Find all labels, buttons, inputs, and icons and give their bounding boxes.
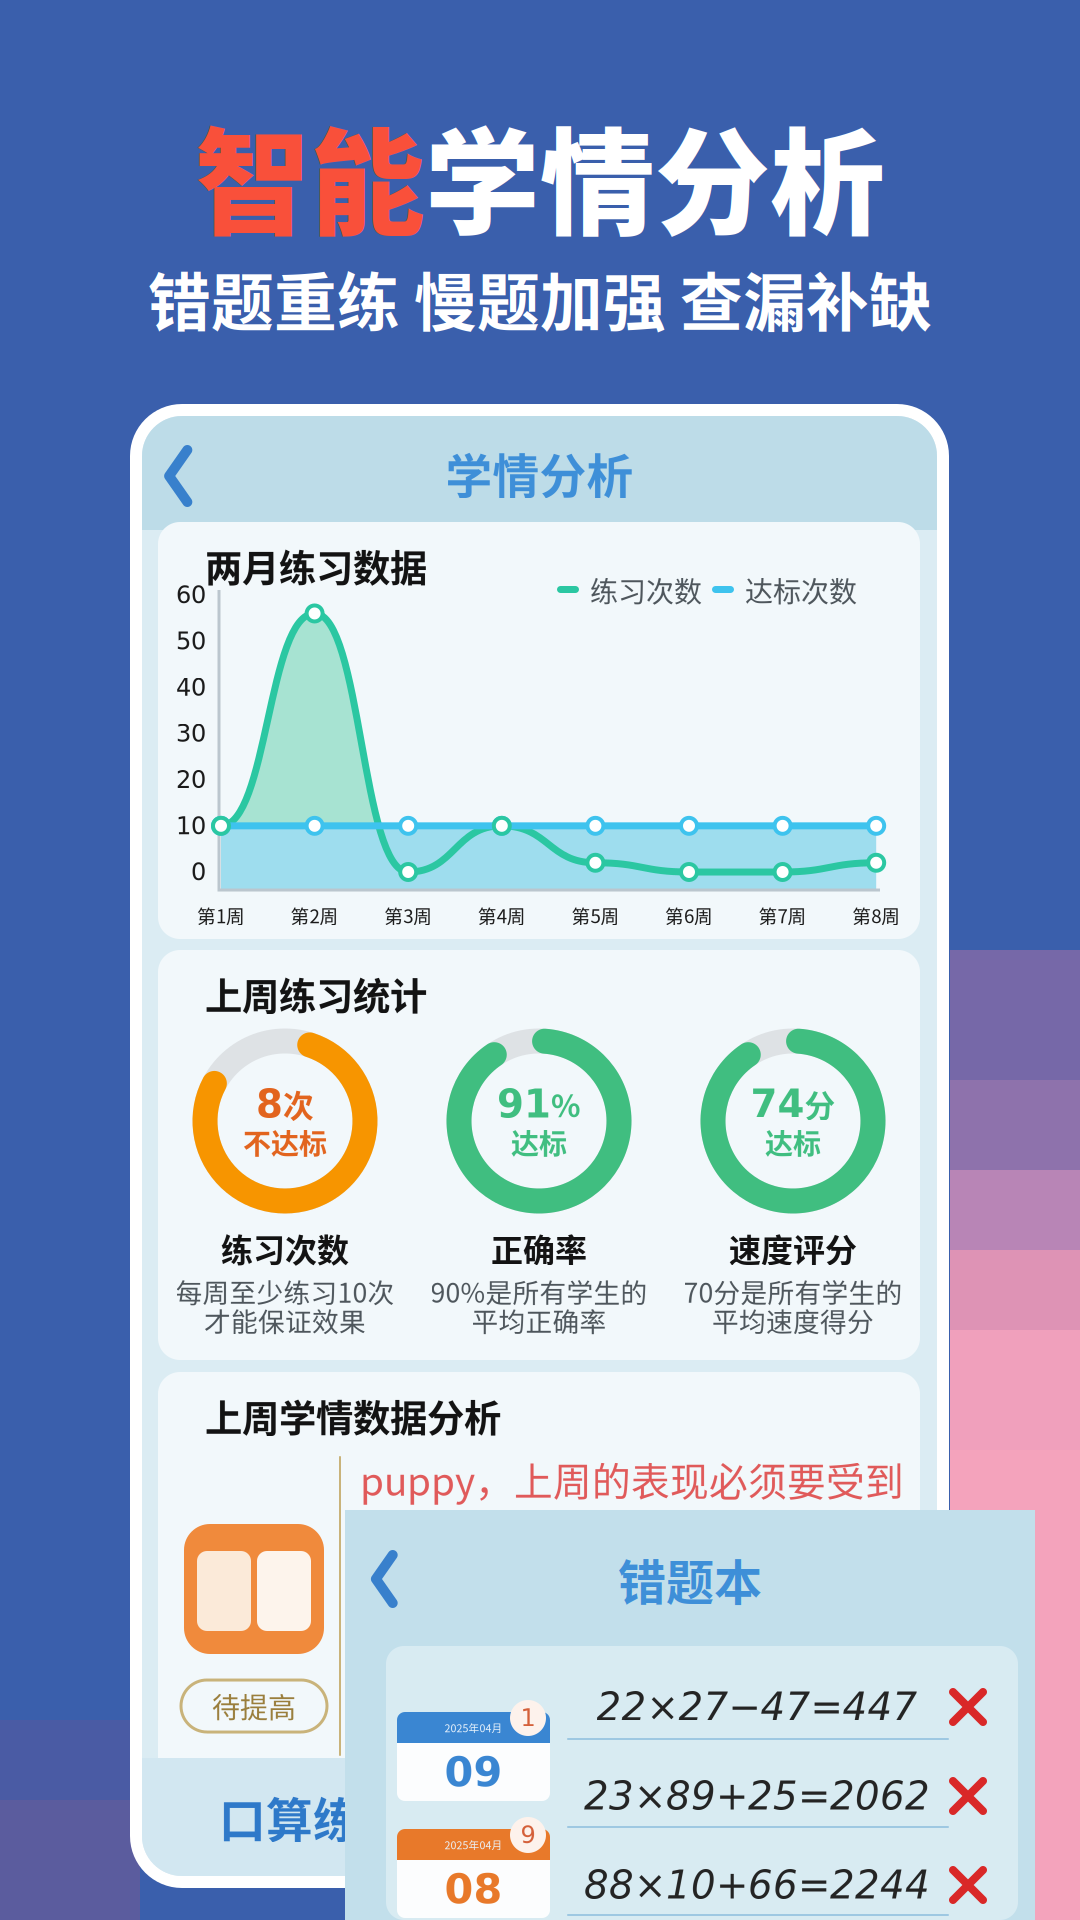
staticText: 错题本 bbox=[618, 1544, 762, 1614]
staticText: 第5周 bbox=[571, 901, 619, 928]
staticText: 第2周 bbox=[291, 901, 339, 928]
staticText: 批评哦。 bbox=[360, 1499, 516, 1555]
staticText: 88×10+66=2244 bbox=[584, 1862, 930, 1907]
staticText: 20 bbox=[176, 766, 206, 794]
staticText: 错题重练 慢题加强 查漏补缺 bbox=[148, 253, 932, 343]
staticText: 待提高 bbox=[212, 1686, 296, 1726]
button[interactable]: 返回 bbox=[148, 438, 210, 514]
staticText: 智能 bbox=[195, 92, 425, 258]
staticText: 90%是所有学生的 bbox=[430, 1272, 647, 1310]
staticText: 速度评分 bbox=[729, 1225, 857, 1271]
staticText: 2025年04月 bbox=[444, 1837, 502, 1852]
staticText: 74 bbox=[750, 1081, 804, 1126]
staticText: 练习次数 bbox=[590, 570, 702, 610]
staticText: 1 bbox=[520, 1704, 535, 1732]
staticText: 学情分析 bbox=[445, 439, 633, 507]
staticText: 次 bbox=[283, 1082, 314, 1126]
staticText: 上周练习统计 bbox=[205, 967, 427, 1021]
staticText: 正确率 bbox=[491, 1225, 587, 1271]
staticText: 10 bbox=[176, 812, 206, 840]
staticText: 2025年04月 bbox=[444, 1720, 502, 1735]
staticText: 9 bbox=[520, 1821, 535, 1849]
staticText: 8 bbox=[256, 1081, 283, 1126]
staticText: 正确率还不够充分，答题正确率较为优 bbox=[360, 1556, 921, 1604]
staticText: 两月练习数据 bbox=[205, 539, 427, 593]
staticText: 慢，需要积极加强；总体上，对当前知 bbox=[360, 1652, 921, 1700]
staticText: 平均速度得分 bbox=[712, 1301, 874, 1339]
staticText: 第3周 bbox=[384, 901, 432, 928]
staticText: % bbox=[551, 1082, 581, 1126]
staticText: 达标 bbox=[765, 1122, 821, 1162]
staticText: 才能保证效果 bbox=[204, 1301, 366, 1339]
staticText: 60 bbox=[176, 581, 206, 609]
staticText: 第4周 bbox=[478, 901, 526, 928]
staticText: 口算练习 bbox=[219, 1783, 407, 1851]
staticText: 秀，但仍有一定提升空间，答题速度较 bbox=[360, 1604, 921, 1652]
staticText: 不达标 bbox=[243, 1122, 327, 1162]
staticText: 每周至少练习10次 bbox=[175, 1272, 394, 1310]
button[interactable]: 返回 bbox=[356, 1544, 414, 1614]
staticText: 09 bbox=[444, 1748, 502, 1796]
staticText: 第6周 bbox=[665, 901, 713, 928]
staticText: 23×89+25=2062 bbox=[584, 1773, 930, 1818]
staticText: 达标 bbox=[511, 1122, 567, 1162]
staticText: 50 bbox=[176, 627, 206, 655]
staticText: 分 bbox=[804, 1082, 835, 1126]
staticText: 30 bbox=[176, 719, 206, 747]
staticText: 08 bbox=[444, 1865, 502, 1913]
staticText: 第1周 bbox=[197, 901, 245, 928]
staticText: 22×27−47=447 bbox=[596, 1684, 917, 1729]
staticText: 识点掌握还不够扎实，熟练度也不够， bbox=[360, 1700, 921, 1748]
staticText: 上周学情数据分析 bbox=[205, 1389, 501, 1443]
button[interactable]: 口算练习 bbox=[188, 1758, 438, 1876]
staticText: 第7周 bbox=[759, 901, 807, 928]
staticText: 0 bbox=[191, 858, 206, 886]
staticText: 学情分析 bbox=[425, 92, 885, 258]
staticText: 70分是所有学生的 bbox=[683, 1272, 902, 1310]
staticText: 平均正确率 bbox=[471, 1301, 606, 1339]
staticText: 第8周 bbox=[852, 901, 900, 928]
staticText: 40 bbox=[176, 673, 206, 701]
staticText: puppy，上周的表现必须要受到 bbox=[360, 1451, 904, 1507]
staticText: 91 bbox=[497, 1081, 551, 1126]
staticText: 达标次数 bbox=[745, 570, 857, 610]
staticText: 练习次数 bbox=[221, 1225, 349, 1271]
staticText: 必须要加强练习量和练习频次。 bbox=[360, 1748, 822, 1796]
